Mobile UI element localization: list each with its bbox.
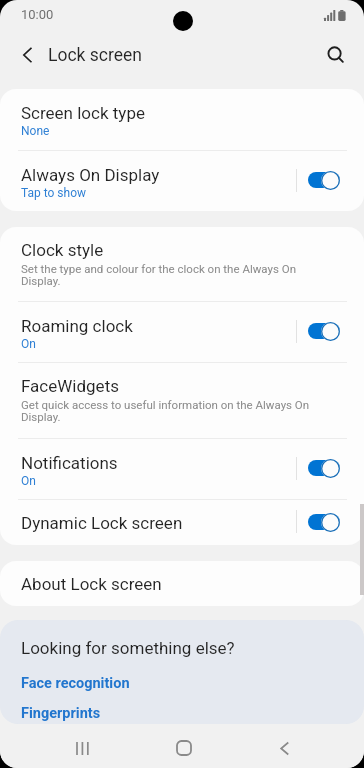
button[interactable]: Always On Display: [300, 164, 348, 196]
staticText: Clock style: [21, 240, 104, 260]
staticText: Notifications: [21, 453, 118, 473]
button[interactable]: About Lock screen: [0, 561, 364, 606]
button[interactable]: Clock style: [0, 227, 364, 301]
staticText: Looking for something else?: [21, 638, 235, 658]
button[interactable]: FaceWidgets: [0, 363, 364, 438]
staticText: About Lock screen: [21, 574, 162, 594]
button[interactable]: Fingerprints: [21, 705, 101, 722]
button[interactable]: Dynamic Lock screen: [300, 506, 348, 538]
staticText: Always On Display: [21, 165, 160, 185]
staticText: Set the type and colour for the clock on…: [21, 262, 311, 287]
button[interactable]: Back: [234, 724, 335, 768]
staticText: Face recognition: [21, 675, 130, 692]
button[interactable]: Roaming clock: [0, 302, 364, 362]
staticText: Lock screen: [48, 45, 142, 66]
button[interactable]: Search: [312, 31, 360, 78]
staticText: Roaming clock: [21, 316, 133, 336]
staticText: Get quick access to useful information o…: [21, 398, 311, 423]
button[interactable]: Home: [133, 724, 234, 768]
staticText: None: [21, 124, 50, 138]
button[interactable]: Roaming clock: [300, 315, 348, 347]
staticText: Tap to show: [21, 186, 87, 200]
staticText: On: [21, 337, 36, 351]
button[interactable]: Recent apps: [31, 724, 133, 768]
button[interactable]: Navigate up: [4, 31, 52, 78]
button[interactable]: Always On Display: [0, 151, 364, 211]
staticText: FaceWidgets: [21, 376, 119, 396]
staticText: On: [21, 474, 36, 488]
button[interactable]: Dynamic Lock screen: [0, 500, 364, 545]
staticText: 10:00: [21, 7, 54, 22]
button[interactable]: Notifications: [0, 439, 364, 499]
staticText: Dynamic Lock screen: [21, 513, 183, 533]
button[interactable]: Notifications: [300, 452, 348, 484]
staticText: Screen lock type: [21, 103, 145, 123]
button[interactable]: Screen lock type: [0, 89, 364, 150]
staticText: Fingerprints: [21, 705, 101, 722]
button[interactable]: Face recognition: [21, 675, 130, 692]
